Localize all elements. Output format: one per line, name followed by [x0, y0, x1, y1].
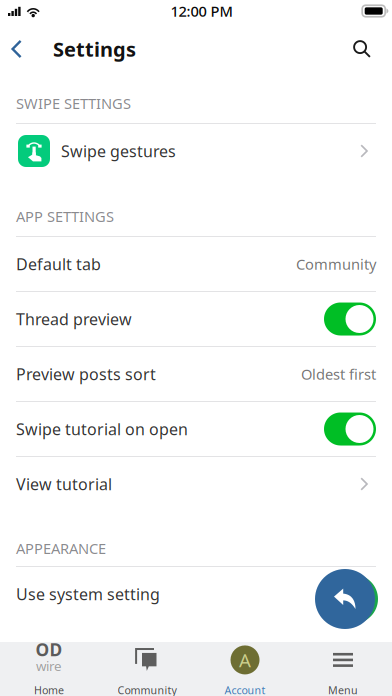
staticText: Account	[224, 683, 265, 696]
button[interactable]: Swipe tutorial on open	[0, 402, 392, 456]
button[interactable]: OD	[0, 642, 98, 696]
button[interactable]: Reply	[315, 569, 378, 629]
staticText: Use system setting	[16, 583, 160, 605]
button[interactable]: Preview posts sort	[0, 347, 392, 401]
staticText: Swipe gestures	[61, 140, 176, 162]
button[interactable]: Community	[98, 642, 196, 696]
staticText: 12:00 PM	[171, 1, 233, 21]
button[interactable]: Thread preview	[0, 292, 392, 346]
staticText: wire	[36, 657, 62, 675]
staticText: A	[239, 647, 251, 672]
staticText: SWIPE SETTINGS	[16, 93, 131, 113]
staticText: Community	[117, 683, 176, 696]
button[interactable]: A	[196, 642, 294, 696]
staticText: Swipe tutorial on open	[16, 418, 188, 440]
staticText: APP SETTINGS	[16, 206, 114, 226]
button[interactable]: Use system setting	[0, 567, 392, 621]
staticText: Home	[34, 683, 64, 696]
staticText: View tutorial	[16, 473, 112, 495]
button[interactable]: Swipe gestures	[0, 124, 392, 178]
button[interactable]: Default tab	[0, 237, 392, 291]
staticText: APPEARANCE	[16, 538, 106, 558]
staticText: Settings	[53, 36, 136, 62]
staticText: OD	[35, 638, 62, 661]
staticText: Preview posts sort	[16, 363, 156, 385]
staticText: Oldest first	[301, 364, 376, 384]
button[interactable]: View tutorial	[0, 457, 392, 511]
button[interactable]: Search	[340, 27, 384, 71]
button[interactable]: Menu	[294, 642, 392, 696]
staticText: Default tab	[16, 253, 101, 275]
staticText: Thread preview	[16, 308, 132, 330]
staticText: Menu	[328, 683, 358, 696]
button[interactable]: Back	[2, 27, 31, 71]
staticText: Community	[296, 254, 376, 274]
